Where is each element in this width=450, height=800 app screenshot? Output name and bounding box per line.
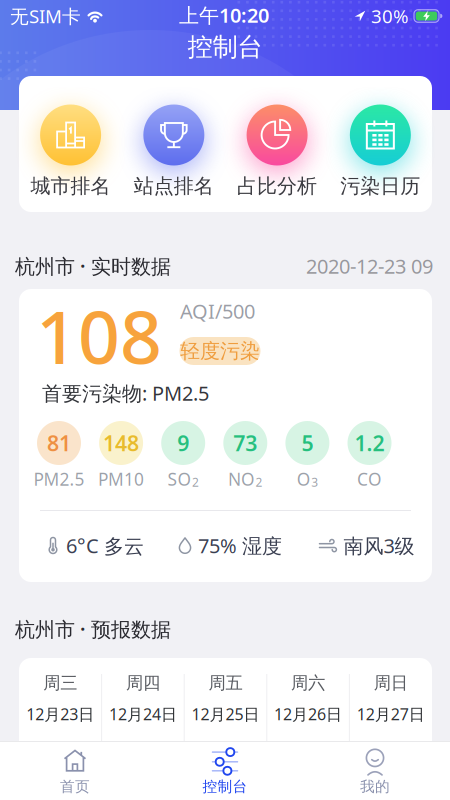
staticText: NO: [228, 467, 255, 490]
staticText: 9: [177, 429, 189, 457]
button[interactable]: 我的: [300, 741, 450, 800]
staticText: PM2.5: [33, 467, 84, 490]
staticText: 污染日历: [340, 174, 420, 198]
staticText: 轻度污染: [180, 339, 260, 363]
staticText: 周六: [291, 672, 325, 694]
button[interactable]: 控制台: [150, 741, 300, 800]
staticText: 108: [36, 287, 162, 384]
staticText: 控制台: [187, 31, 262, 62]
staticText: AQI/500: [180, 298, 255, 324]
staticText: 我的: [360, 777, 390, 795]
staticText: 30%: [371, 4, 409, 28]
staticText: 1.2: [354, 429, 384, 457]
staticText: 周三: [43, 672, 77, 694]
staticText: 站点排名: [134, 174, 214, 198]
staticText: 杭州市 · 预报数据: [15, 616, 171, 642]
staticText: 周日: [374, 672, 408, 694]
staticText: 81: [47, 429, 71, 457]
staticText: 6°C 多云: [66, 532, 144, 559]
staticText: 上午10:20: [179, 2, 269, 28]
staticText: SO: [167, 467, 191, 490]
staticText: 2020-12-23 09: [306, 253, 433, 279]
button[interactable]: 站点排名: [122, 76, 225, 212]
staticText: 周四: [126, 672, 160, 694]
staticText: 周五: [208, 672, 242, 694]
button[interactable]: 占比分析: [225, 76, 329, 212]
staticText: 148: [103, 429, 139, 457]
staticText: 12月23日: [26, 703, 94, 725]
staticText: 12月26日: [274, 703, 342, 725]
staticText: 首要污染物: PM2.5: [42, 380, 209, 406]
button[interactable]: 污染日历: [329, 76, 432, 212]
staticText: 南风3级: [343, 532, 414, 559]
staticText: 首页: [60, 777, 90, 795]
staticText: 12月24日: [109, 703, 177, 725]
staticText: 杭州市 · 实时数据: [15, 253, 171, 279]
staticText: 12月27日: [357, 703, 425, 725]
staticText: 5: [301, 429, 313, 457]
staticText: 75% 湿度: [198, 532, 282, 559]
staticText: 2: [192, 474, 199, 490]
button[interactable]: 城市排名: [19, 76, 122, 212]
staticText: O: [297, 467, 311, 490]
staticText: 2: [256, 474, 263, 490]
button[interactable]: 首页: [0, 741, 150, 800]
staticText: 控制台: [202, 777, 247, 795]
staticText: 无SIM卡: [10, 4, 81, 28]
staticText: PM10: [98, 467, 144, 490]
staticText: 3: [311, 474, 318, 490]
staticText: 12月25日: [191, 703, 259, 725]
staticText: 城市排名: [31, 174, 111, 198]
staticText: 占比分析: [237, 174, 317, 198]
staticText: CO: [357, 467, 382, 490]
staticText: 73: [233, 429, 257, 457]
